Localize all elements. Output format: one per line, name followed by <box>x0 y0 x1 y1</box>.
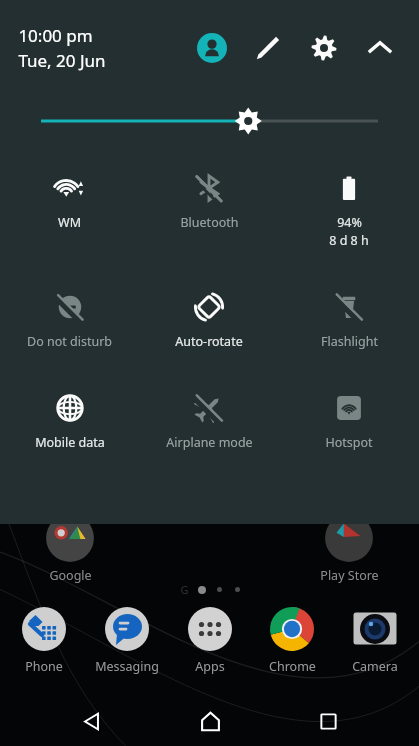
button[interactable]: Home <box>182 699 238 743</box>
button[interactable]: Collapse <box>357 25 403 71</box>
staticText: Do not disturb <box>27 333 112 350</box>
button[interactable]: Bluetooth <box>139 162 279 235</box>
button[interactable]: Airplane mode <box>139 382 279 455</box>
button[interactable]: User account <box>189 25 235 71</box>
button[interactable]: Play Store <box>301 512 397 584</box>
staticText: Google <box>49 567 92 584</box>
button[interactable]: Apps <box>171 604 249 675</box>
button[interactable]: WM <box>0 162 139 235</box>
staticText: Messaging <box>95 658 159 675</box>
staticText: Flashlight <box>321 333 378 350</box>
staticText: 8 d 8 h <box>329 232 369 249</box>
staticText: Camera <box>352 658 398 675</box>
button[interactable]: Recent apps <box>300 699 356 743</box>
staticText: Chrome <box>269 658 316 675</box>
button[interactable]: Settings <box>301 25 347 71</box>
staticText: Auto-rotate <box>175 333 243 350</box>
button[interactable]: Messaging <box>88 604 166 675</box>
button[interactable]: Edit <box>245 25 291 71</box>
staticText: 10:00 pm <box>18 24 93 47</box>
staticText: Mobile data <box>35 434 105 451</box>
button[interactable]: Google <box>22 512 118 584</box>
staticText: G <box>180 582 189 597</box>
staticText: 94% <box>337 214 362 231</box>
button[interactable]: Chrome <box>253 604 331 675</box>
button[interactable]: Back <box>63 699 119 743</box>
staticText: Play Store <box>320 567 379 584</box>
staticText: Apps <box>195 658 225 675</box>
staticText: WM <box>58 214 81 231</box>
staticText: Tue, 20 Jun <box>18 49 106 72</box>
staticText: Bluetooth <box>180 214 239 231</box>
button[interactable]: Camera <box>336 604 414 675</box>
button[interactable]: Auto-rotate <box>139 281 279 354</box>
staticText: Airplane mode <box>166 434 253 451</box>
button[interactable]: Phone <box>5 604 83 675</box>
staticText: Phone <box>25 658 63 675</box>
button[interactable]: Mobile data <box>0 382 139 455</box>
staticText: Hotspot <box>325 434 373 451</box>
button[interactable]: Brightness <box>0 96 419 146</box>
button[interactable]: Flashlight <box>279 281 419 354</box>
button[interactable]: Hotspot <box>279 382 419 455</box>
button[interactable]: 94% <box>279 162 419 253</box>
button[interactable]: Do not disturb <box>0 281 139 354</box>
